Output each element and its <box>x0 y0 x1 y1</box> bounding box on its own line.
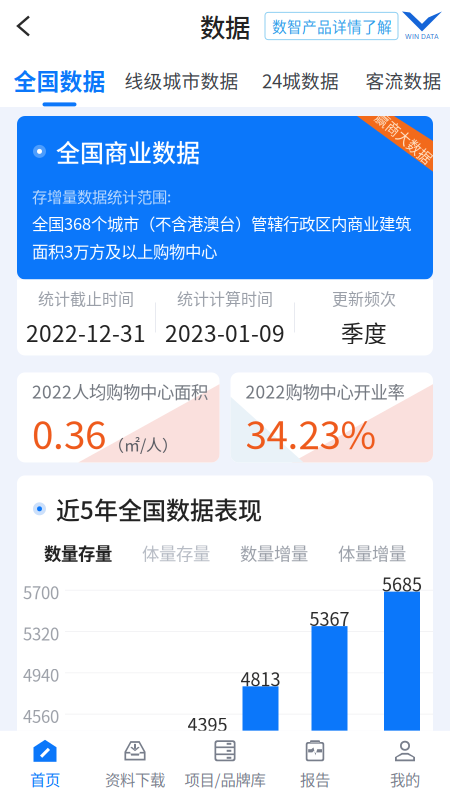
staticText: 首页 <box>30 768 60 790</box>
staticText: 全国数据 <box>13 64 105 96</box>
staticText: 5320 <box>23 621 59 645</box>
staticText: 季度 <box>341 316 387 348</box>
button[interactable]: 首页 <box>0 740 90 790</box>
staticText: 2022购物中心开业率 <box>245 378 404 403</box>
staticText: 数量存量 <box>44 540 112 565</box>
staticText: 2022-12-31 <box>26 316 146 348</box>
button[interactable]: Product details <box>265 11 450 41</box>
staticText: 2023-01-09 <box>165 316 285 348</box>
staticText: 统计截止时间 <box>38 286 134 310</box>
button[interactable]: 资料下载 <box>90 740 180 790</box>
staticText: WIN DATA <box>405 32 439 41</box>
staticText: 统计计算时间 <box>177 286 273 310</box>
staticText: 数据 <box>200 8 250 44</box>
staticText: 5700 <box>23 580 59 604</box>
staticText: 5685 <box>382 571 422 597</box>
button[interactable]: Back <box>0 3 43 48</box>
staticText: 体量增量 <box>338 540 406 565</box>
staticText: 全国368个城市（不含港澳台）管辖行政区内商业建筑 <box>32 211 411 235</box>
staticText: 4560 <box>23 704 59 728</box>
button[interactable]: 客流数据 <box>357 55 450 103</box>
staticText: 数量增量 <box>240 540 308 565</box>
staticText: 资料下载 <box>105 768 165 790</box>
staticText: 存增量数据统计范围: <box>32 185 171 207</box>
button[interactable]: 全国数据 <box>0 53 119 106</box>
staticText: 项目/品牌库 <box>184 768 265 790</box>
button[interactable]: 我的 <box>360 740 450 790</box>
staticText: 更新频次 <box>332 286 396 310</box>
staticText: 我的 <box>390 768 420 790</box>
staticText: 4940 <box>23 662 59 686</box>
staticText: 线级城市数据 <box>124 66 238 93</box>
staticText: 客流数据 <box>365 66 441 93</box>
staticText: （㎡/人） <box>108 432 178 455</box>
staticText: 体量存量 <box>142 540 210 565</box>
staticText: 报告 <box>300 768 330 790</box>
staticText: 近5年全国数据表现 <box>56 491 262 526</box>
staticText: 2022人均购物中心面积 <box>32 378 208 403</box>
staticText: 全国商业数据 <box>56 134 200 169</box>
staticText: 面积3万方及以上购物中心 <box>32 239 217 262</box>
staticText: 4813 <box>240 665 280 691</box>
staticText: 0.36 <box>32 404 106 460</box>
staticText: 赢商大数据 <box>369 127 439 147</box>
button[interactable]: 24城数据 <box>244 55 357 103</box>
button[interactable]: 报告 <box>270 740 360 790</box>
button[interactable]: 线级城市数据 <box>119 55 244 103</box>
staticText: 34.23% <box>245 404 376 460</box>
staticText: 5367 <box>309 605 349 631</box>
staticText: 24城数据 <box>262 66 339 93</box>
staticText: 4395 <box>187 711 227 737</box>
button[interactable]: 项目/品牌库 <box>180 740 270 790</box>
staticText: 数智产品详情了解 <box>272 15 392 37</box>
